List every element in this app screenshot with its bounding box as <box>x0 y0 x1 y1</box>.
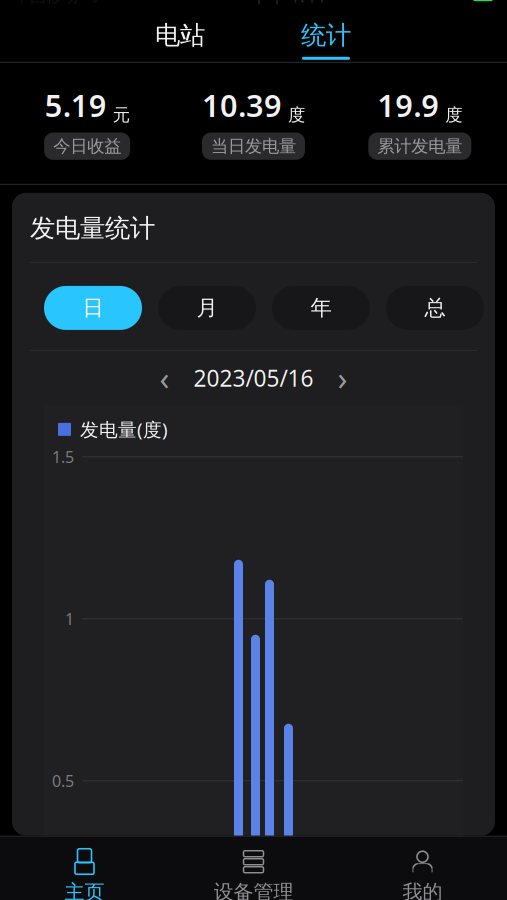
staticText: 主页 <box>64 880 104 900</box>
staticText: 发电量统计 <box>30 213 155 244</box>
staticText: › <box>337 357 347 399</box>
staticText: 1 <box>65 608 74 629</box>
staticText: 总 <box>424 295 445 321</box>
button[interactable]: 总 <box>386 286 484 330</box>
staticText: 年 <box>310 295 331 321</box>
staticText: 设备管理 <box>213 880 293 900</box>
staticText: 发电量(度) <box>80 417 168 442</box>
button[interactable]: Previous day <box>147 361 181 395</box>
staticText: 当日发电量 <box>211 135 296 157</box>
staticText: ‹ <box>159 357 169 399</box>
button[interactable]: 年 <box>272 286 370 330</box>
staticText: 10.39 <box>202 85 282 125</box>
staticText: 统计 <box>301 20 351 51</box>
button[interactable]: 设备管理 <box>169 843 338 900</box>
staticText: 0.5 <box>52 770 74 791</box>
staticText: 今日收益 <box>53 135 121 157</box>
staticText: 2023/05/16 <box>193 363 313 393</box>
staticText: 月 <box>196 295 217 321</box>
staticText: 19.9 <box>377 85 439 125</box>
button[interactable]: 我的 <box>338 843 507 900</box>
staticText: 累计发电量 <box>377 135 462 157</box>
staticText: 下午 1:44 <box>251 0 325 7</box>
staticText: 度 <box>445 104 462 125</box>
staticText: 度 <box>288 104 305 125</box>
staticText: 电站 <box>155 20 205 51</box>
staticText: 5.19 <box>45 85 107 125</box>
button[interactable]: Next day <box>325 361 359 395</box>
staticText: 元 <box>113 104 130 125</box>
button[interactable]: 电站 <box>120 20 240 60</box>
staticText: 日 <box>82 295 103 321</box>
button[interactable]: 主页 <box>0 843 169 900</box>
staticText: 我的 <box>402 880 442 900</box>
staticText: 中国移动 ᯤ <box>14 0 103 6</box>
staticText: 1.5 <box>52 446 74 467</box>
button[interactable]: 统计 <box>266 20 386 60</box>
button[interactable]: 日 <box>44 286 142 330</box>
button[interactable]: 月 <box>158 286 256 330</box>
